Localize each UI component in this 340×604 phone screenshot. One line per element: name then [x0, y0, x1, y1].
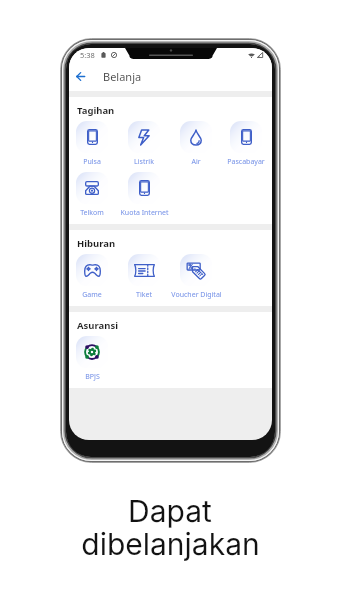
staticText: Dapat: [128, 493, 212, 529]
staticText: Asuransi: [77, 319, 119, 332]
button[interactable]: Pulsa: [69, 121, 118, 172]
button[interactable]: Kuota Internet: [118, 172, 170, 223]
staticText: Air: [191, 157, 201, 167]
button[interactable]: BPJS: [69, 336, 118, 387]
button[interactable]: Pascabayar: [222, 121, 269, 172]
staticText: Kuota Internet: [120, 208, 169, 218]
button[interactable]: Game: [69, 254, 118, 305]
button[interactable]: Back: [72, 68, 89, 85]
button[interactable]: Air: [170, 121, 222, 172]
staticText: Telkom: [80, 208, 104, 218]
staticText: Listrik: [134, 157, 154, 167]
staticText: Pascabayar: [227, 157, 265, 167]
button[interactable]: Telkom: [69, 172, 118, 223]
staticText: Hiburan: [77, 237, 116, 250]
staticText: BPJS: [85, 372, 100, 382]
button[interactable]: Tiket: [118, 254, 170, 305]
staticText: Tiket: [136, 290, 152, 300]
button[interactable]: Listrik: [118, 121, 170, 172]
staticText: Belanja: [103, 69, 142, 84]
staticText: dibelanjakan: [81, 526, 260, 562]
staticText: 5:38: [80, 50, 95, 60]
button[interactable]: Voucher Digital: [170, 254, 222, 305]
staticText: Pulsa: [83, 157, 101, 167]
staticText: Voucher Digital: [171, 290, 222, 300]
staticText: Game: [82, 290, 102, 300]
staticText: Tagihan: [77, 104, 115, 117]
